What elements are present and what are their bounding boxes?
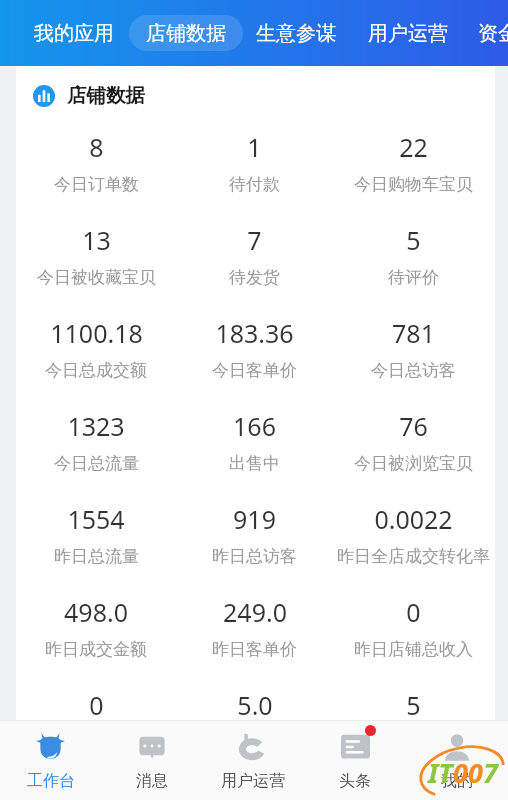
button[interactable]: 166 <box>175 397 334 490</box>
staticText: 我的应用 <box>34 21 114 46</box>
staticText: 249.0 <box>223 595 287 629</box>
staticText: 0 <box>406 595 421 629</box>
button[interactable]: 13 <box>17 211 175 304</box>
staticText: 7 <box>483 754 498 791</box>
button[interactable]: 1323 <box>17 397 175 490</box>
button[interactable]: 22 <box>334 118 493 211</box>
staticText: 待评价 <box>388 267 439 288</box>
staticText: 7 <box>247 223 262 257</box>
staticText: 919 <box>233 502 276 536</box>
button[interactable]: 我的 <box>406 720 508 800</box>
staticText: 今日被浏览宝贝 <box>354 453 473 474</box>
other: 用户运营 <box>238 733 268 762</box>
staticText: 用户运营 <box>368 21 448 46</box>
button[interactable]: 店铺数据 <box>129 15 243 51</box>
button[interactable]: 183.36 <box>175 304 334 397</box>
staticText: 昨日店铺总收入 <box>354 639 473 660</box>
button[interactable]: 498.0 <box>17 583 175 676</box>
staticText: 5.0 <box>237 688 273 720</box>
staticText: 用户运营 <box>221 771 285 791</box>
button[interactable]: 生意参谋 <box>256 13 336 53</box>
button[interactable]: 919 <box>175 490 334 583</box>
staticText: 待付款 <box>229 174 280 195</box>
button[interactable]: 0 <box>17 676 175 720</box>
other: 工作台 <box>36 733 65 762</box>
staticText: 生意参谋 <box>256 21 336 46</box>
button[interactable]: 我的应用 <box>34 13 114 53</box>
staticText: 消息 <box>136 771 168 791</box>
button[interactable]: 1554 <box>17 490 175 583</box>
other: 消息 <box>137 733 167 762</box>
staticText: 今日被收藏宝贝 <box>37 267 156 288</box>
button[interactable]: 用户运营 <box>202 720 304 800</box>
staticText: 昨日成交金额 <box>45 639 147 660</box>
staticText: 183.36 <box>215 316 294 350</box>
staticText: 今日总访客 <box>371 360 456 381</box>
staticText: 781 <box>392 316 435 350</box>
button[interactable]: 消息 <box>101 720 202 800</box>
button[interactable]: 1 <box>175 118 334 211</box>
staticText: 0 <box>89 688 104 720</box>
button[interactable]: 781 <box>334 304 493 397</box>
staticText: 1 <box>247 130 262 164</box>
staticText: 昨日总访客 <box>212 546 297 567</box>
staticText: 0.0022 <box>374 502 453 536</box>
staticText: 昨日总流量 <box>54 546 139 567</box>
button[interactable]: 资金 <box>478 13 508 53</box>
staticText: 166 <box>233 409 276 443</box>
staticText: 1554 <box>67 502 125 536</box>
button[interactable]: 76 <box>334 397 493 490</box>
button[interactable]: 5 <box>334 211 493 304</box>
staticText: 5 <box>406 223 421 257</box>
staticText: 昨日全店成交转化率 <box>337 546 490 567</box>
staticText: 头条 <box>339 771 371 791</box>
button[interactable]: 5.0 <box>175 676 334 720</box>
staticText: 今日购物车宝贝 <box>354 174 473 195</box>
staticText: 我的 <box>441 771 473 791</box>
other: 头条 <box>341 733 370 762</box>
button[interactable]: 5 <box>334 676 493 720</box>
staticText: 出售中 <box>229 453 280 474</box>
staticText: 498.0 <box>64 595 128 629</box>
staticText: 8 <box>89 130 104 164</box>
staticText: IT <box>428 754 453 791</box>
button[interactable]: 0 <box>334 583 493 676</box>
staticText: 店铺数据 <box>67 83 145 108</box>
staticText: 今日总成交额 <box>45 360 147 381</box>
staticText: 00 <box>453 754 483 791</box>
button[interactable]: 头条 <box>304 720 406 800</box>
staticText: 13 <box>82 223 111 257</box>
staticText: 店铺数据 <box>146 21 226 46</box>
staticText: 资金 <box>478 21 508 46</box>
button[interactable]: 249.0 <box>175 583 334 676</box>
staticText: 工作台 <box>27 771 75 791</box>
staticText: 1100.18 <box>50 316 143 350</box>
button[interactable]: 工作台 <box>0 720 101 800</box>
staticText: 5 <box>406 688 421 720</box>
other: 我的 <box>442 733 472 762</box>
staticText: 1323 <box>67 409 125 443</box>
button[interactable]: 7 <box>175 211 334 304</box>
staticText: 今日总流量 <box>54 453 139 474</box>
staticText: 今日客单价 <box>212 360 297 381</box>
staticText: 22 <box>399 130 428 164</box>
button[interactable]: 0.0022 <box>334 490 493 583</box>
staticText: 待发货 <box>229 267 280 288</box>
button[interactable]: 1100.18 <box>17 304 175 397</box>
button[interactable]: 8 <box>17 118 175 211</box>
staticText: 今日订单数 <box>54 174 139 195</box>
staticText: 76 <box>399 409 428 443</box>
staticText: 昨日客单价 <box>212 639 297 660</box>
button[interactable]: 用户运营 <box>368 13 448 53</box>
